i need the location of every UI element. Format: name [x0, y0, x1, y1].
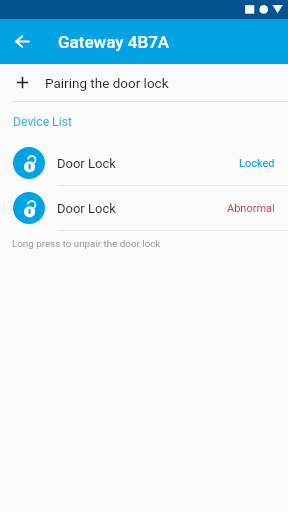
staticText: Pairing the door lock: [45, 75, 169, 91]
staticText: Door Lock: [57, 156, 116, 171]
staticText: Abnormal: [227, 202, 275, 215]
staticText: Device List: [13, 115, 72, 129]
button[interactable]: Door Lock: [0, 141, 288, 185]
button[interactable]: Door Lock: [0, 186, 288, 230]
staticText: Door Lock: [57, 201, 116, 216]
button[interactable]: Pairing the door lock: [0, 64, 288, 101]
staticText: Gateway 4B7A: [58, 32, 170, 52]
staticText: Locked: [239, 157, 275, 170]
staticText: Long press to unpair the door lock: [12, 238, 161, 249]
button[interactable]: Back: [5, 24, 40, 59]
